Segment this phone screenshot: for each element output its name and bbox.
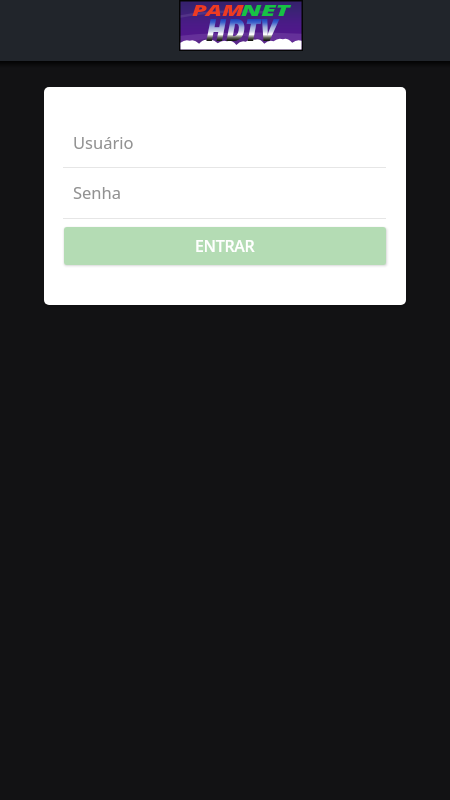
staticText: Senha [73, 181, 122, 203]
button[interactable]: ENTRAR [64, 227, 386, 265]
button[interactable]: Usuário [63, 124, 386, 160]
other: PAMNET HDTV logo [179, 0, 303, 51]
button[interactable]: Senha [63, 174, 386, 210]
staticText: Usuário [73, 131, 134, 153]
staticText: ENTRAR [195, 235, 255, 257]
